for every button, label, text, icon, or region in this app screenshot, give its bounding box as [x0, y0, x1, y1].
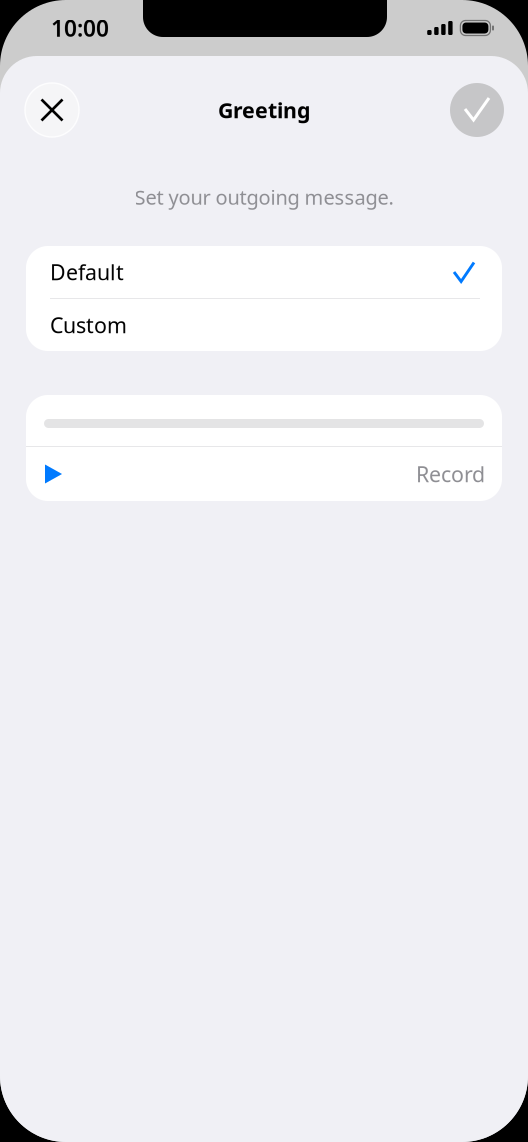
button[interactable]: Play	[45, 447, 89, 501]
staticText: Record	[416, 460, 485, 488]
staticText: 10:00	[51, 13, 109, 43]
staticText: Set your outgoing message.	[134, 184, 393, 210]
button[interactable]: Playback position	[26, 395, 502, 446]
staticText: Default	[50, 258, 124, 286]
button[interactable]: Default	[26, 246, 502, 298]
staticText: Greeting	[218, 96, 310, 124]
button[interactable]: Done	[450, 83, 504, 137]
button[interactable]: Custom	[26, 299, 502, 351]
button[interactable]: Close	[25, 83, 79, 137]
staticText: Custom	[50, 311, 127, 339]
button[interactable]: Record	[416, 447, 485, 501]
